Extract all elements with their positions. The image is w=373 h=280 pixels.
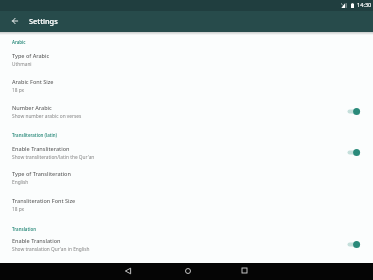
button[interactable]: Number Arabic <box>0 100 373 123</box>
button[interactable]: Number Arabic <box>346 106 362 117</box>
staticText: Number Arabic <box>12 104 52 111</box>
button[interactable]: Type of Arabic <box>0 48 373 71</box>
staticText: Show transliteration/latin the Qur'an <box>12 154 95 161</box>
staticText: 18 px <box>12 87 25 94</box>
staticText: Arabic Font Size <box>12 78 54 85</box>
button[interactable]: Enable Translation <box>346 239 362 250</box>
button[interactable]: Enable Transliteration <box>0 141 373 164</box>
staticText: Transliteration (latin) <box>12 132 58 138</box>
staticText: English <box>12 179 29 186</box>
button[interactable]: Arabic Font Size <box>0 74 373 97</box>
button[interactable]: Enable Transliteration <box>346 147 362 158</box>
button[interactable]: Type of Transliteration <box>0 166 373 189</box>
button[interactable]: Home <box>170 262 205 279</box>
staticText: Show number arabic on verses <box>12 113 82 120</box>
staticText: Uthmani <box>12 61 32 68</box>
button[interactable]: Transliteration Font Size <box>0 193 373 216</box>
staticText: Enable Transliteration <box>12 145 70 152</box>
staticText: Enable Translation <box>12 237 61 244</box>
staticText: Show translation Qur'an in English <box>12 246 90 253</box>
staticText: Type of Transliteration <box>12 170 71 177</box>
button[interactable]: Recent apps <box>227 262 262 279</box>
staticText: Transliteration Font Size <box>12 197 76 204</box>
button[interactable]: Back <box>110 262 145 279</box>
staticText: 14:30 <box>357 1 372 9</box>
staticText: Arabic <box>12 39 26 45</box>
staticText: 18 px <box>12 206 25 213</box>
staticText: Type of Arabic <box>12 52 50 59</box>
button[interactable]: Back <box>8 14 21 27</box>
staticText: Settings <box>29 16 58 26</box>
staticText: Translation <box>12 226 36 232</box>
button[interactable]: Enable Translation <box>0 233 373 256</box>
